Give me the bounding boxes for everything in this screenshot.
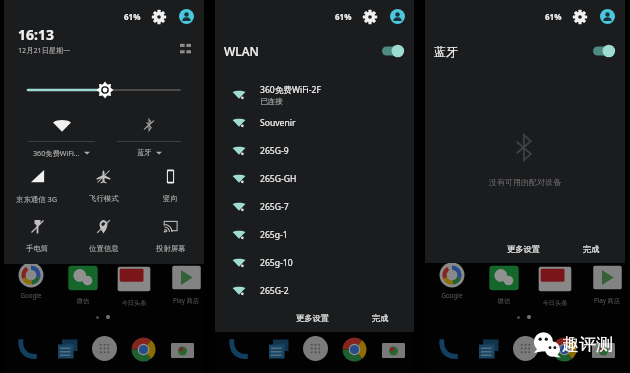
button[interactable]: Phone xyxy=(224,336,251,363)
staticText: 12月21日星期一 xyxy=(18,45,71,55)
staticText: Play 商店 xyxy=(165,296,207,304)
staticText: 投射屏幕 xyxy=(156,244,186,253)
staticText: Google xyxy=(431,291,473,299)
button[interactable]: Google xyxy=(10,262,52,299)
button[interactable]: Play 商店 xyxy=(586,262,628,304)
staticText: 趣评测 xyxy=(562,334,613,355)
staticText: Play 商店 xyxy=(586,296,628,304)
staticText: 今日头条 xyxy=(534,299,576,307)
button[interactable]: 360免费WiFi… xyxy=(28,117,95,158)
staticText: 265G-9 xyxy=(260,145,289,157)
staticText: 61% xyxy=(124,11,141,22)
staticText: Souvenir xyxy=(260,117,296,129)
button[interactable]: Messages xyxy=(476,337,501,362)
staticText: 61% xyxy=(335,11,352,22)
button[interactable]: 今日头条 xyxy=(113,262,155,307)
button[interactable]: Chrome xyxy=(342,337,367,362)
button[interactable]: 飞行模式 xyxy=(70,169,137,203)
staticText: 360免费WiFi-2F xyxy=(260,84,321,96)
button[interactable]: Camera xyxy=(381,338,406,363)
staticText: 竖向 xyxy=(163,194,178,203)
button[interactable]: Google xyxy=(431,262,473,299)
staticText: 今日头条 xyxy=(113,299,155,307)
staticText: Google xyxy=(10,291,52,299)
button[interactable]: 位置信息 xyxy=(70,219,137,253)
staticText: 蓝牙 xyxy=(137,148,152,157)
staticText: 265g-10 xyxy=(260,257,293,269)
staticText: 265G-7 xyxy=(260,201,289,213)
staticText: 微信 xyxy=(483,297,525,305)
button[interactable]: 微信 xyxy=(483,262,525,305)
staticText: 完成 xyxy=(372,313,389,323)
button[interactable]: 265g-1 xyxy=(215,221,414,249)
button[interactable]: 投射屏幕 xyxy=(137,219,204,253)
button[interactable]: All apps xyxy=(303,336,328,361)
staticText: 360免费WiFi… xyxy=(33,148,80,158)
button[interactable]: User account xyxy=(390,9,405,24)
button[interactable]: 更多设置 xyxy=(291,310,334,326)
staticText: 蓝牙 xyxy=(434,44,458,59)
button[interactable]: Messages xyxy=(55,337,80,362)
button[interactable]: 竖向 xyxy=(137,169,204,203)
button[interactable]: Google xyxy=(221,262,263,299)
button[interactable]: 京东通信 3G xyxy=(4,169,70,204)
button[interactable]: 265G-GH xyxy=(215,165,414,193)
button[interactable]: 更多设置 xyxy=(502,241,545,257)
button[interactable]: 265G-2 xyxy=(215,277,414,305)
button[interactable]: 360免费WiFi-2F xyxy=(215,81,414,109)
staticText: 飞行模式 xyxy=(89,194,119,203)
button[interactable]: All apps xyxy=(92,336,117,361)
staticText: 京东通信 3G xyxy=(16,194,58,204)
staticText: 手电筒 xyxy=(26,244,49,253)
button[interactable]: Camera xyxy=(591,338,616,363)
button[interactable]: 完成 xyxy=(578,241,605,257)
button[interactable]: Play 商店 xyxy=(376,262,418,304)
button[interactable]: 蓝牙 xyxy=(117,117,181,157)
staticText: Google xyxy=(221,291,263,299)
button[interactable]: Souvenir xyxy=(215,109,414,137)
button[interactable]: 微信 xyxy=(273,262,315,305)
button[interactable]: 今日头条 xyxy=(534,262,576,307)
button[interactable]: User account xyxy=(179,9,194,24)
button[interactable]: Messages xyxy=(266,337,291,362)
staticText: 16:13 xyxy=(18,25,54,44)
button[interactable]: Chrome xyxy=(552,337,577,362)
staticText: 位置信息 xyxy=(89,244,119,253)
button[interactable]: 265G-9 xyxy=(215,137,414,165)
staticText: 没有可用的配对设备 xyxy=(489,177,561,187)
button[interactable]: 蓝牙 xyxy=(425,38,625,64)
button[interactable]: Edit quick settings xyxy=(176,39,194,57)
button[interactable]: Settings xyxy=(152,10,166,24)
button[interactable]: Chrome xyxy=(131,337,156,362)
staticText: 265G-GH xyxy=(260,173,297,185)
staticText: 265G-2 xyxy=(260,285,289,297)
staticText: 完成 xyxy=(583,244,600,254)
staticText: WLAN xyxy=(224,43,259,59)
staticText: 已连接 xyxy=(260,97,283,107)
button[interactable]: 265g-10 xyxy=(215,249,414,277)
button[interactable]: User account xyxy=(600,9,615,24)
button[interactable]: Phone xyxy=(13,336,40,363)
staticText: 265g-1 xyxy=(260,229,288,241)
button[interactable]: Settings xyxy=(363,10,377,24)
button[interactable]: WLAN xyxy=(215,38,414,64)
button[interactable]: All apps xyxy=(513,336,538,361)
staticText: Play 商店 xyxy=(376,296,418,304)
button[interactable]: 微信 xyxy=(62,262,104,305)
button[interactable]: 手电筒 xyxy=(4,219,70,253)
staticText: 61% xyxy=(545,11,562,22)
staticText: 微信 xyxy=(62,297,104,305)
button[interactable]: Camera xyxy=(170,338,195,363)
button[interactable]: Brightness xyxy=(4,82,204,98)
button[interactable]: 265G-7 xyxy=(215,193,414,221)
button[interactable]: Play 商店 xyxy=(165,262,207,304)
button[interactable]: 完成 xyxy=(367,310,394,326)
button[interactable]: Settings xyxy=(573,10,587,24)
staticText: 更多设置 xyxy=(507,244,540,254)
staticText: 更多设置 xyxy=(296,313,329,323)
button[interactable]: Phone xyxy=(434,336,461,363)
